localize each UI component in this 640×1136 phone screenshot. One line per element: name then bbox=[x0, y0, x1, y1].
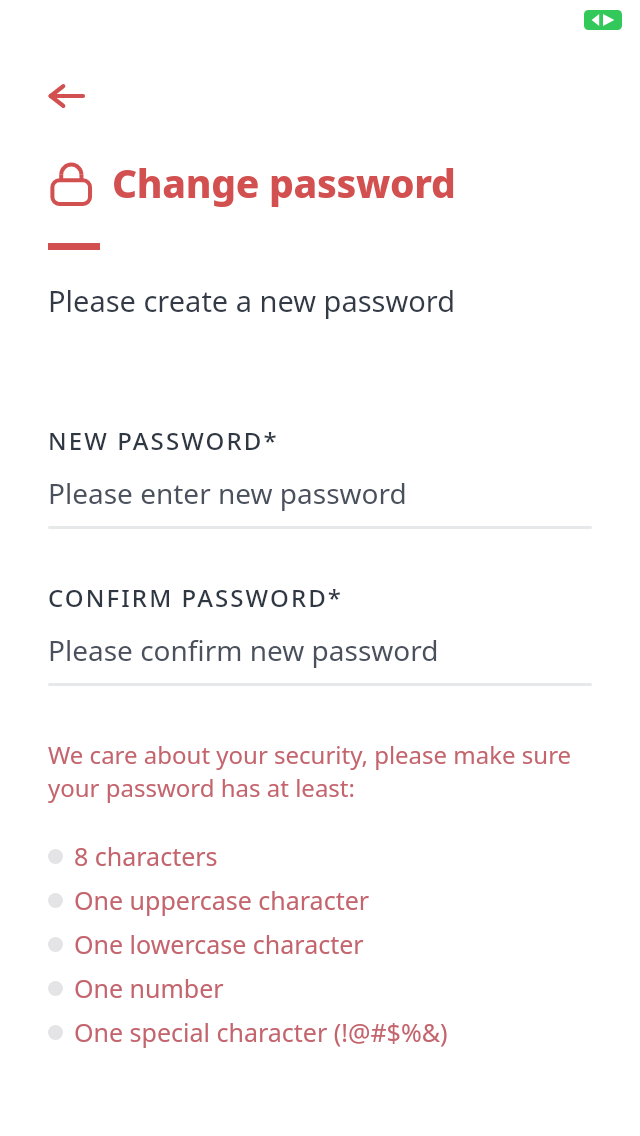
staticText: Please enter new password bbox=[48, 474, 407, 512]
button[interactable]: Back bbox=[40, 72, 92, 120]
staticText: Change password bbox=[112, 156, 456, 209]
staticText: CONFIRM PASSWORD* bbox=[48, 581, 344, 614]
staticText: NEW PASSWORD* bbox=[48, 424, 279, 457]
staticText: 8 characters bbox=[74, 839, 218, 873]
staticText: One uppercase character bbox=[74, 883, 370, 917]
button[interactable]: NEW PASSWORD* bbox=[0, 424, 640, 529]
staticText: Please create a new password bbox=[48, 281, 456, 320]
button[interactable]: One uppercase character bbox=[0, 878, 640, 922]
staticText: One number bbox=[74, 971, 224, 1005]
button[interactable]: One special character (!@#$%&) bbox=[0, 1010, 640, 1054]
staticText: One special character (!@#$%&) bbox=[74, 1015, 448, 1049]
other: Battery charging bbox=[584, 10, 622, 30]
staticText: We care about your security, please make… bbox=[48, 738, 576, 804]
staticText: One lowercase character bbox=[74, 927, 364, 961]
button[interactable]: One lowercase character bbox=[0, 922, 640, 966]
button[interactable]: 8 characters bbox=[0, 834, 640, 878]
button[interactable]: CONFIRM PASSWORD* bbox=[0, 581, 640, 686]
button[interactable]: One number bbox=[0, 966, 640, 1010]
staticText: Please confirm new password bbox=[48, 631, 439, 669]
